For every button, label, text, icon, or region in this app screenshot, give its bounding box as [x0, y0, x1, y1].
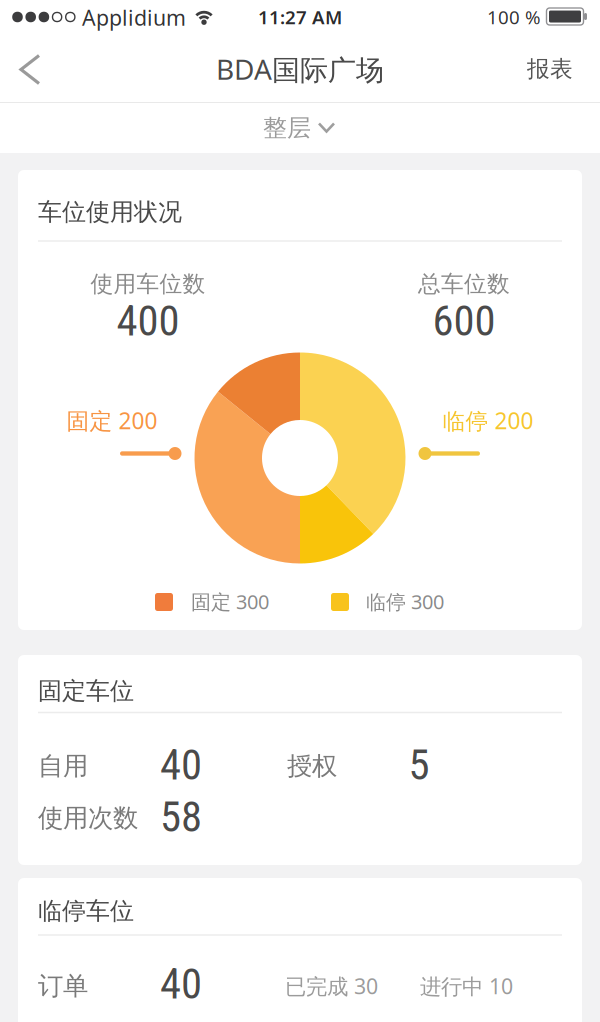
staticText: 整层 [263, 113, 311, 143]
staticText: 400 [116, 296, 179, 346]
staticText: 固定 300 [191, 588, 269, 615]
staticText: BDA国际广场 [216, 50, 384, 88]
button[interactable]: 整层 [0, 103, 600, 153]
button[interactable]: 报表 [505, 39, 595, 99]
staticText: 5 [408, 740, 429, 790]
staticText: 授权 [287, 750, 337, 781]
staticText: 40 [160, 740, 202, 790]
staticText: Applidium [82, 3, 186, 32]
staticText: 固定 200 [66, 405, 157, 435]
staticText: 使用车位数 [90, 270, 205, 298]
staticText: 报表 [527, 55, 573, 83]
staticText: 11:27 AM [258, 5, 342, 29]
staticText: 固定车位 [38, 676, 134, 706]
staticText: 总车位数 [418, 270, 510, 298]
staticText: 临停 300 [366, 588, 444, 615]
staticText: 订单 [38, 970, 88, 1001]
staticText: 600 [432, 296, 495, 346]
staticText: 100 % [487, 5, 541, 29]
button[interactable] [2, 40, 52, 100]
staticText: 使用次数 [38, 802, 138, 833]
staticText: 40 [160, 959, 202, 1009]
staticText: 临停 200 [442, 405, 533, 435]
staticText: 已完成 30 [285, 972, 378, 1000]
staticText: 临停车位 [38, 896, 134, 926]
staticText: 自用 [38, 750, 88, 781]
staticText: 车位使用状况 [38, 197, 182, 227]
staticText: 58 [160, 792, 202, 842]
staticText: 进行中 10 [420, 972, 513, 1000]
